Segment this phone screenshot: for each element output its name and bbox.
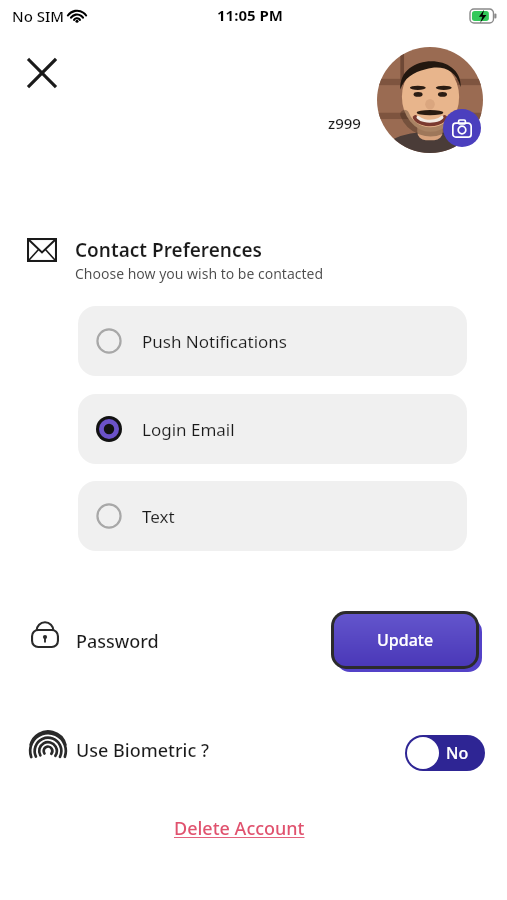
staticText: Use Biometric ? [76,738,209,763]
staticText: Update [377,629,434,651]
button[interactable]: Close [16,47,68,99]
button[interactable]: Text [78,481,467,551]
button[interactable]: Login Email [78,394,467,464]
staticText: Login Email [142,418,235,441]
staticText: 11:05 PM [217,5,283,25]
button[interactable]: Delete Account [174,816,305,841]
staticText: Text [142,505,175,528]
staticText: Delete Account [174,816,305,841]
staticText: No [446,742,469,764]
button[interactable]: Use biometric toggle, off [405,735,485,771]
button[interactable]: Change photo [443,109,481,147]
staticText: Contact Preferences [75,237,262,263]
staticText: No SIM [12,6,65,26]
button[interactable]: Update [334,614,476,666]
button[interactable] [377,47,483,153]
staticText: Password [76,629,159,654]
staticText: z999 [328,113,361,133]
staticText: Push Notifications [142,330,287,353]
staticText: Choose how you wish to be contacted [75,264,324,283]
button[interactable]: Push Notifications [78,306,467,376]
